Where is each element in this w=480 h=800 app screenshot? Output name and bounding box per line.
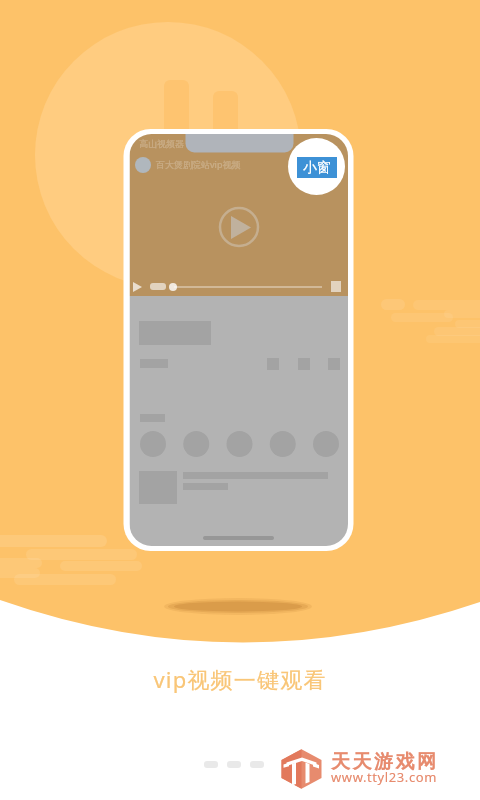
staticText: 高山视频器 <box>139 138 184 149</box>
staticText: www.ttyl23.com <box>331 768 438 786</box>
staticText: 百大煲剧院站vip视频 <box>156 158 241 170</box>
staticText: 天天游戏网 <box>331 750 439 774</box>
button[interactable]: 小窗 <box>297 157 337 178</box>
staticText: vip视频一键观看 <box>153 664 327 694</box>
staticText: 小窗 <box>303 159 331 177</box>
button[interactable]: 高山视频器 <box>139 138 184 149</box>
